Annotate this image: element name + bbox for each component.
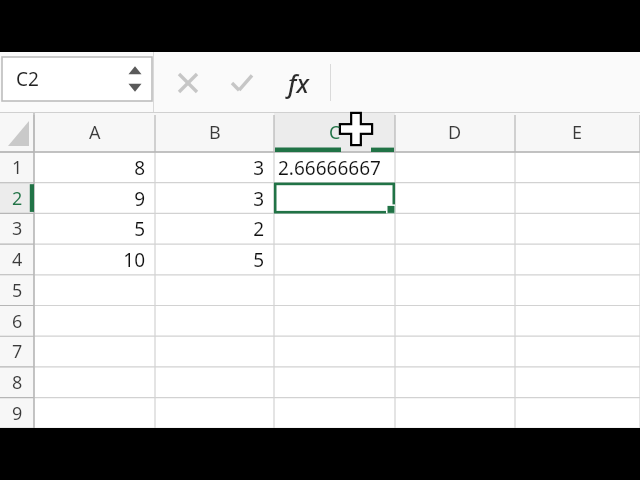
staticText: B <box>209 120 221 145</box>
staticText: 4 <box>12 247 23 272</box>
staticText: 8 <box>134 155 145 181</box>
staticText: 2 <box>12 186 23 211</box>
staticText: 2 <box>253 216 264 242</box>
staticText: 9 <box>12 401 23 426</box>
staticText: 2.66666667 <box>278 155 381 181</box>
button[interactable]: 4 <box>0 244 34 275</box>
button[interactable]: 8 <box>0 367 34 398</box>
staticText: fx <box>288 66 309 100</box>
staticText: 5 <box>12 278 23 303</box>
staticText: E <box>572 120 583 145</box>
button[interactable]: D <box>395 113 515 152</box>
button[interactable]: 5 <box>34 213 155 244</box>
button[interactable]: 2.66666667 <box>274 152 395 183</box>
button[interactable]: 7 <box>0 336 34 367</box>
staticText: 9 <box>134 186 145 212</box>
staticText: 8 <box>12 370 23 395</box>
button[interactable]: 9 <box>34 183 155 214</box>
staticText: 10 <box>123 247 145 273</box>
button[interactable]: 3 <box>155 183 274 214</box>
button[interactable]: A <box>34 113 155 152</box>
button[interactable]: B <box>155 113 274 152</box>
staticText: 1 <box>12 155 23 180</box>
button[interactable]: 2 <box>155 213 274 244</box>
button[interactable]: E <box>515 113 640 152</box>
button[interactable]: 1 <box>0 152 34 183</box>
staticText: D <box>448 120 462 145</box>
button[interactable]: 2 <box>0 183 34 214</box>
button[interactable]: 5 <box>0 275 34 306</box>
staticText: A <box>89 120 101 145</box>
button[interactable]: 3 <box>155 152 274 183</box>
button[interactable]: 10 <box>34 244 155 275</box>
staticText: 7 <box>12 339 23 364</box>
staticText: 5 <box>253 247 264 273</box>
staticText: 3 <box>253 186 264 212</box>
staticText: 3 <box>12 216 23 241</box>
button[interactable]: Enter <box>218 52 266 113</box>
staticText: C <box>329 120 341 145</box>
button[interactable]: Insert function <box>276 52 320 113</box>
button[interactable]: C <box>274 113 395 152</box>
button[interactable]: 6 <box>0 306 34 337</box>
button[interactable]: Name box spinner <box>124 57 146 101</box>
button[interactable]: Cell C2 selected <box>274 183 395 214</box>
staticText: 5 <box>134 216 145 242</box>
staticText: C2 <box>16 66 39 92</box>
button[interactable]: 9 <box>0 398 34 429</box>
button[interactable]: 8 <box>34 152 155 183</box>
staticText: 6 <box>12 309 23 334</box>
button[interactable]: 5 <box>155 244 274 275</box>
button[interactable]: Cancel <box>164 52 212 113</box>
staticText: 3 <box>253 155 264 181</box>
button[interactable]: C2 <box>2 57 152 101</box>
button[interactable]: 3 <box>0 213 34 244</box>
